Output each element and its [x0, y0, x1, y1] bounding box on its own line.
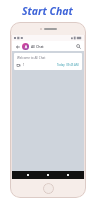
button[interactable]: Back	[24, 171, 32, 179]
button[interactable]: Search	[74, 42, 82, 50]
button[interactable]: Recents	[64, 171, 72, 179]
staticText: Start Chat	[22, 4, 73, 18]
staticText: AE Chat	[31, 44, 44, 49]
button[interactable]: Welcome to AE Chat	[14, 53, 82, 70]
button[interactable]: Home button	[43, 183, 54, 194]
button[interactable]: Home	[44, 171, 52, 179]
staticText: Welcome to AE Chat	[17, 56, 46, 60]
staticText: 1	[23, 63, 25, 67]
button[interactable]: Back	[14, 43, 21, 50]
staticText: Today 09:45 AM	[57, 63, 79, 67]
